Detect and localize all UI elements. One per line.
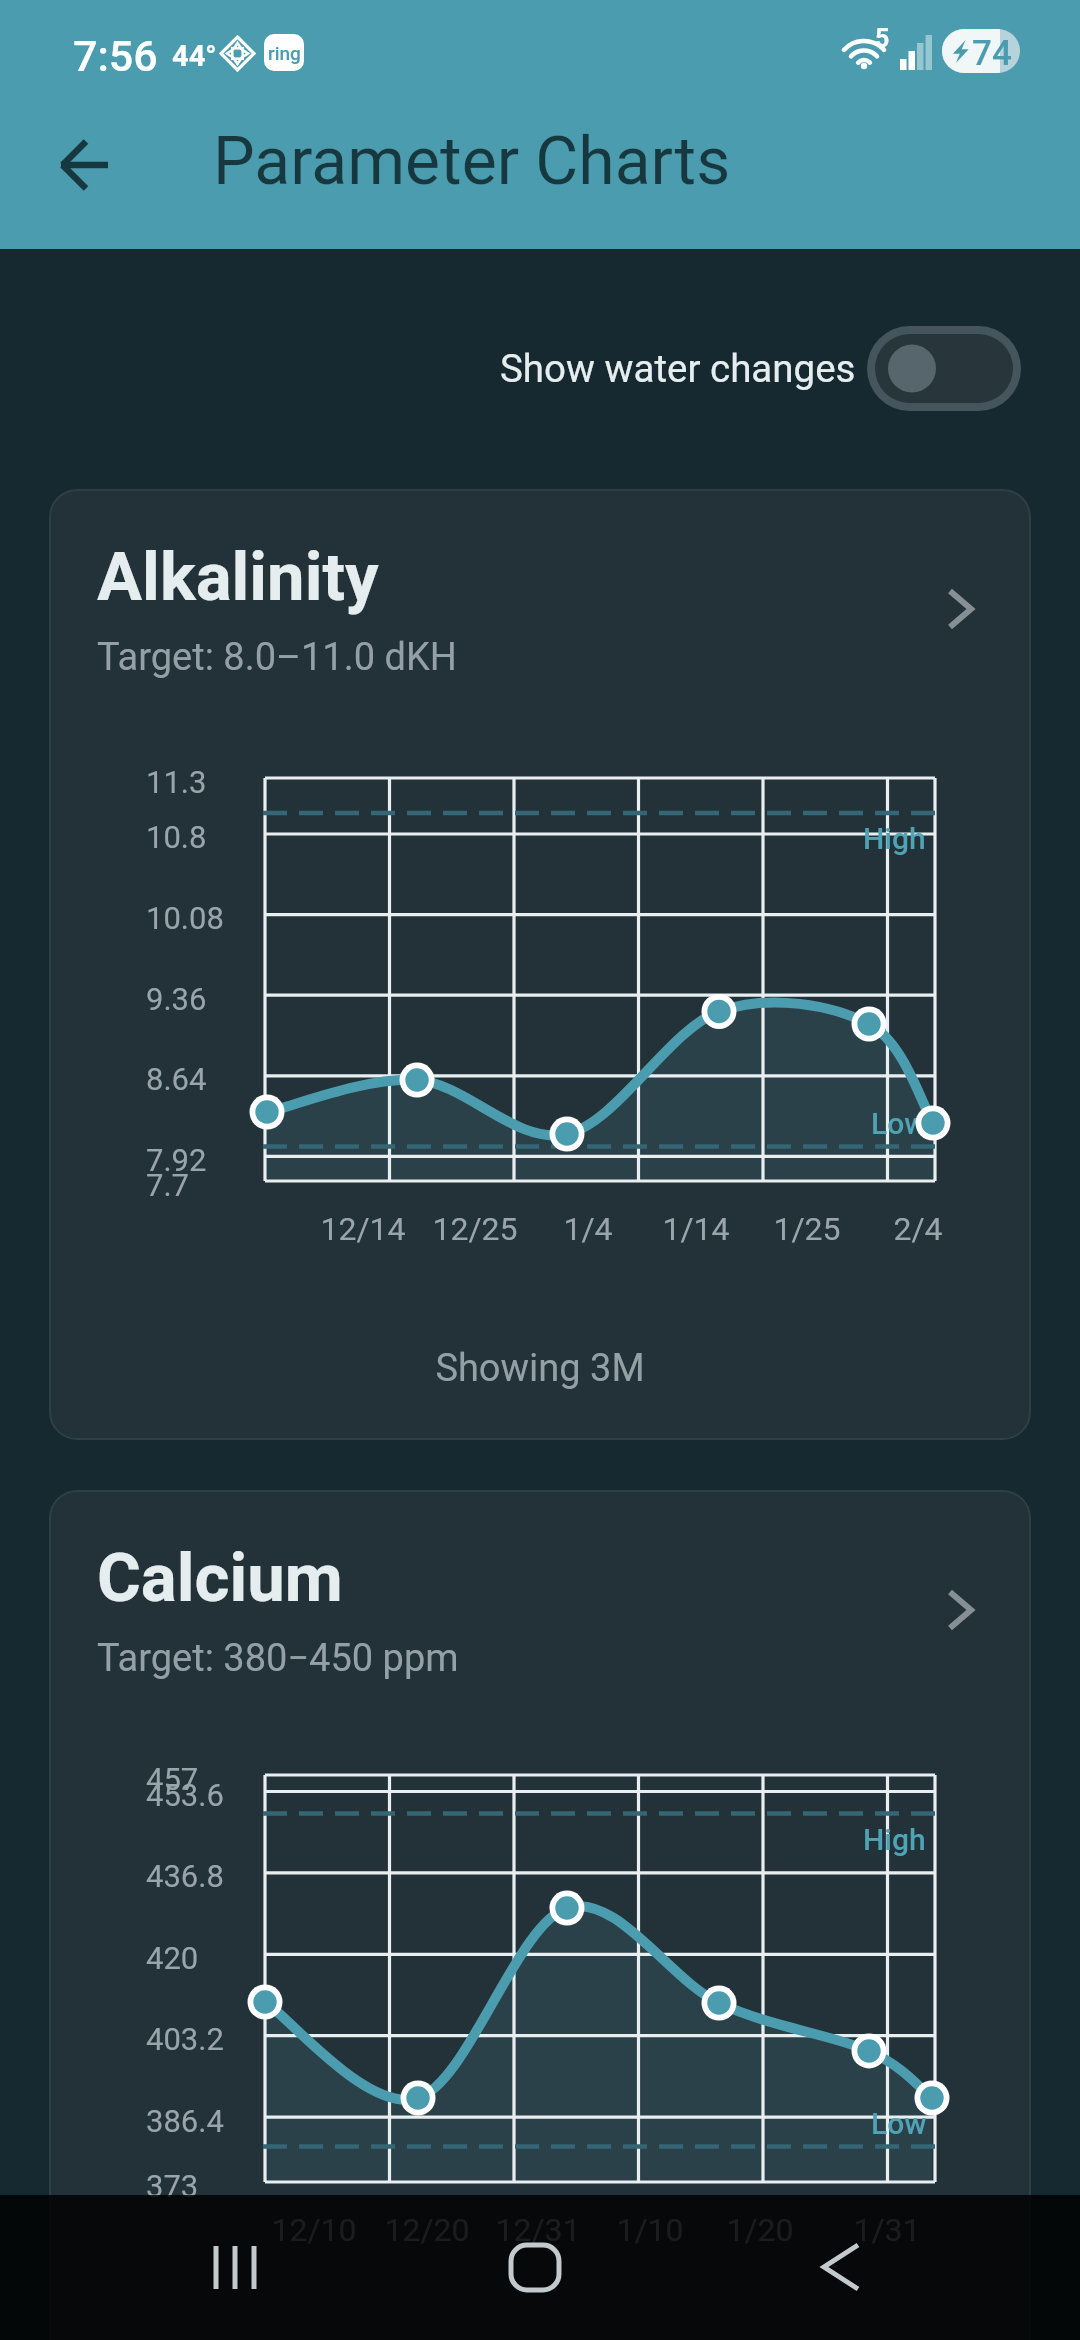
- staticText: 8.64: [146, 1061, 207, 1097]
- staticText: 7.92: [146, 1142, 207, 1178]
- staticText: Alkalinity: [97, 538, 379, 617]
- staticText: Low: [871, 2106, 927, 2141]
- staticText: 373: [146, 2168, 199, 2204]
- staticText: 12/31: [468, 2211, 608, 2249]
- button[interactable]: Calcium: [49, 1490, 1031, 2340]
- staticText: 44°: [172, 39, 217, 73]
- button[interactable]: Home: [475, 2207, 595, 2327]
- staticText: Calcium: [97, 1539, 343, 1618]
- staticText: Showing 3M: [49, 1346, 1031, 1391]
- staticText: Target: 380−450 ppm: [97, 1636, 459, 1681]
- staticText: 436.8: [146, 1858, 224, 1894]
- staticText: 74: [972, 33, 1012, 73]
- staticText: 453.6: [146, 1777, 224, 1813]
- staticText: 2/4: [848, 1210, 988, 1248]
- staticText: High: [863, 821, 926, 856]
- staticText: 11.3: [146, 764, 207, 800]
- staticText: 12/14: [293, 1210, 433, 1248]
- staticText: 12/10: [244, 2211, 384, 2249]
- staticText: Parameter Charts: [213, 123, 731, 200]
- staticText: 403.2: [146, 2021, 224, 2057]
- staticText: 10.08: [146, 900, 224, 936]
- button[interactable]: Back: [780, 2207, 900, 2327]
- staticText: 5: [875, 24, 890, 53]
- staticText: 9.36: [146, 981, 207, 1017]
- button[interactable]: Show water changes: [500, 326, 1021, 411]
- staticText: ring: [268, 42, 301, 64]
- staticText: Show water changes: [500, 346, 856, 391]
- button[interactable]: Back: [19, 119, 111, 211]
- button[interactable]: Recent apps: [175, 2207, 295, 2327]
- staticText: High: [863, 1822, 926, 1857]
- button[interactable]: Alkalinity: [49, 489, 1031, 1440]
- staticText: 12/20: [357, 2211, 497, 2249]
- staticText: 1/4: [518, 1210, 658, 1248]
- staticText: 7.7: [146, 1167, 190, 1203]
- staticText: Low: [871, 1106, 927, 1141]
- staticText: 7:56: [73, 31, 158, 81]
- staticText: 1/20: [690, 2211, 830, 2249]
- staticText: Target: 8.0–11.0 dKH: [97, 635, 457, 680]
- staticText: 386.4: [146, 2103, 224, 2139]
- staticText: 1/10: [580, 2211, 720, 2249]
- staticText: 1/14: [626, 1210, 766, 1248]
- staticText: 420: [146, 1940, 199, 1976]
- staticText: 1/25: [737, 1210, 877, 1248]
- staticText: 457: [146, 1761, 199, 1797]
- staticText: 1/31: [817, 2211, 957, 2249]
- staticText: 10.8: [146, 819, 207, 855]
- staticText: 12/25: [405, 1210, 545, 1248]
